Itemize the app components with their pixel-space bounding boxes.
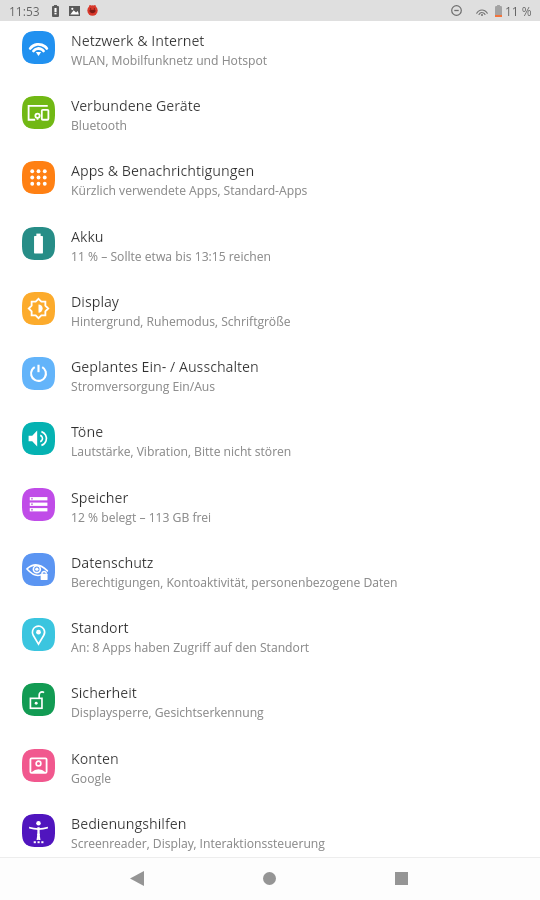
staticText: Berechtigungen, Kontoaktivität, personen…: [71, 574, 398, 591]
staticText: Display: [71, 292, 120, 311]
staticText: WLAN, Mobilfunknetz und Hotspot: [71, 52, 268, 69]
staticText: Lautstärke, Vibration, Bitte nicht störe…: [71, 443, 292, 460]
button[interactable]: Bedienungshilfen: [0, 798, 540, 863]
button[interactable]: Recent apps: [335, 857, 467, 900]
button[interactable]: Apps & Benachrichtigungen: [0, 145, 540, 210]
staticText: Speicher: [71, 488, 129, 507]
staticText: Kürzlich verwendete Apps, Standard-Apps: [71, 182, 308, 199]
staticText: 11 % – Sollte etwa bis 13:15 reichen: [71, 248, 271, 265]
button[interactable]: Back: [71, 857, 203, 900]
staticText: Bedienungshilfen: [71, 814, 187, 833]
button[interactable]: Home: [203, 857, 335, 900]
staticText: Sicherheit: [71, 683, 137, 702]
staticText: Töne: [71, 422, 104, 441]
staticText: Standort: [71, 618, 129, 637]
staticText: Konten: [71, 749, 119, 768]
staticText: 11 %: [505, 3, 532, 19]
staticText: Datenschutz: [71, 553, 154, 572]
staticText: Hintergrund, Ruhemodus, Schriftgröße: [71, 313, 291, 330]
button[interactable]: Speicher: [0, 472, 540, 537]
button[interactable]: Verbundene Geräte: [0, 80, 540, 145]
button[interactable]: Datenschutz: [0, 537, 540, 602]
staticText: Displaysperre, Gesichtserkennung: [71, 704, 264, 721]
button[interactable]: Konten: [0, 733, 540, 798]
staticText: Apps & Benachrichtigungen: [71, 161, 255, 180]
staticText: Akku: [71, 227, 104, 246]
staticText: Geplantes Ein- / Ausschalten: [71, 357, 259, 376]
staticText: Verbundene Geräte: [71, 96, 201, 115]
staticText: An: 8 Apps haben Zugriff auf den Standor…: [71, 639, 310, 656]
staticText: Bluetooth: [71, 117, 127, 134]
button[interactable]: Akku: [0, 211, 540, 276]
staticText: Google: [71, 770, 112, 787]
button[interactable]: Display: [0, 276, 540, 341]
staticText: 11:53: [9, 3, 40, 19]
button[interactable]: Töne: [0, 406, 540, 471]
staticText: 12 % belegt – 113 GB frei: [71, 509, 212, 526]
staticText: Screenreader, Display, Interaktionssteue…: [71, 835, 325, 852]
button[interactable]: Standort: [0, 602, 540, 667]
staticText: Stromversorgung Ein/Aus: [71, 378, 216, 395]
button[interactable]: Geplantes Ein- / Ausschalten: [0, 341, 540, 406]
staticText: Netzwerk & Internet: [71, 31, 205, 50]
button[interactable]: Netzwerk & Internet: [0, 15, 540, 80]
button[interactable]: Sicherheit: [0, 667, 540, 732]
